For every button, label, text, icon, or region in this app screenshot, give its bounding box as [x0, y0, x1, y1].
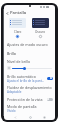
button[interactable]: Protección de la vista [4, 96, 55, 102]
staticText: Pantalla [10, 10, 27, 16]
button[interactable] [9, 18, 26, 28]
button[interactable]: Inicio [27, 114, 33, 120]
staticText: Nivel de brillo [7, 59, 31, 64]
staticText: Brillo [7, 51, 16, 56]
button[interactable]: Seleccionar tema [38, 34, 43, 39]
staticText: Brillo automático [7, 74, 36, 79]
staticText: Adaptable [7, 90, 22, 94]
staticText: Modo de pantalla [7, 104, 37, 109]
staticText: Claro [14, 30, 22, 34]
button[interactable]: Fluidez de desplazamiento [4, 84, 55, 94]
button[interactable]: Atrás [12, 114, 18, 120]
button[interactable]: Seleccionar tema [15, 34, 20, 39]
button[interactable]: Atrás [4, 10, 10, 16]
staticText: Fluidez de desplazamiento [7, 85, 52, 90]
button[interactable]: Recientes [41, 114, 47, 120]
button[interactable]: Brillo automático [4, 73, 55, 83]
button[interactable]: Ajustes de modo oscuro [4, 41, 55, 47]
staticText: Oscuro [35, 30, 46, 34]
button[interactable]: Interruptor [46, 76, 53, 81]
button[interactable]: Interruptor [46, 97, 53, 102]
button[interactable] [32, 18, 49, 28]
staticText: Protección de la vista [7, 97, 43, 102]
staticText: Ajustes de modo oscuro [7, 42, 48, 47]
button[interactable]: Modo de pantalla [4, 103, 55, 113]
staticText: Vívido [7, 109, 16, 113]
staticText: Ajusta el brillo de la pantalla [7, 79, 45, 83]
button[interactable]: Nivel de brillo [4, 58, 55, 64]
